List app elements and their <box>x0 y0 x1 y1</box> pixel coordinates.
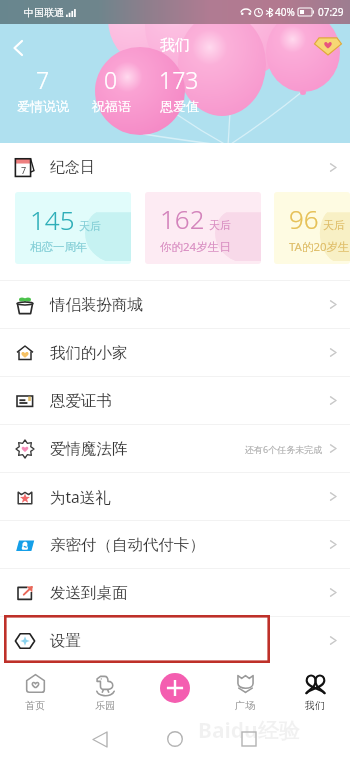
button[interactable]: 设置 <box>0 617 350 664</box>
button[interactable]: Back <box>82 721 118 757</box>
staticText: 亲密付（自动代付卡） <box>50 535 205 555</box>
button[interactable]: 我们的小家 <box>0 329 350 376</box>
staticText: 首页 <box>25 699 45 712</box>
staticText: 天后 <box>209 218 231 232</box>
staticText: 相恋一周年 <box>30 240 88 254</box>
staticText: 爱情说说 <box>17 98 69 114</box>
staticText: 我们 <box>305 699 325 712</box>
button[interactable]: 恩爱证书 <box>0 377 350 424</box>
staticText: 7 <box>36 64 50 95</box>
button[interactable]: Add <box>160 673 190 703</box>
button[interactable]: 情侣装扮商城 <box>0 281 350 328</box>
staticText: 162 <box>160 201 205 236</box>
staticText: 祝福语 <box>92 98 131 114</box>
button[interactable]: 爱情魔法阵 <box>0 425 350 472</box>
button[interactable]: 为ta送礼 <box>0 473 350 520</box>
staticText: 中国联通 <box>24 6 64 19</box>
button[interactable]: 首页 <box>0 664 70 719</box>
button[interactable]: Back <box>2 32 34 64</box>
button[interactable]: VIP <box>314 34 342 56</box>
staticText: 广场 <box>235 699 255 712</box>
staticText: 恩爱证书 <box>50 391 112 411</box>
staticText: 爱情魔法阵 <box>50 439 128 459</box>
staticText: 我们的小家 <box>50 343 128 363</box>
button[interactable]: 亲密付（自动代付卡） <box>0 521 350 568</box>
button[interactable]: 145 <box>15 192 131 264</box>
button[interactable]: 7 <box>0 143 350 192</box>
staticText: 我们 <box>160 36 190 55</box>
staticText: 情侣装扮商城 <box>50 295 143 315</box>
staticText: 你的24岁生日 <box>160 239 231 255</box>
button[interactable]: 广场 <box>210 664 280 719</box>
staticText: 设置 <box>50 631 81 651</box>
staticText: 天后 <box>79 219 101 233</box>
staticText: 145 <box>30 202 75 237</box>
button[interactable]: 0 <box>77 64 145 114</box>
button[interactable]: Recents <box>231 721 267 757</box>
button[interactable]: 我们 <box>280 664 350 719</box>
staticText: 发送到桌面 <box>50 583 128 603</box>
staticText: 40% <box>275 5 295 19</box>
button[interactable]: 173 <box>145 64 213 114</box>
button[interactable]: 7 <box>9 64 77 114</box>
staticText: 恩爱值 <box>160 98 199 114</box>
button[interactable]: 162 <box>145 192 261 264</box>
staticText: Baidu经验 <box>198 716 300 745</box>
staticText: 96 <box>289 201 319 236</box>
button[interactable]: 96 <box>274 192 350 264</box>
button[interactable]: 发送到桌面 <box>0 569 350 616</box>
staticText: 纪念日 <box>50 158 95 177</box>
staticText: TA的20岁生日 <box>289 239 350 255</box>
staticText: 天后 <box>323 218 345 232</box>
staticText: 还有6个任务未完成 <box>245 443 323 455</box>
staticText: 0 <box>104 64 118 95</box>
staticText: 乐园 <box>95 699 115 712</box>
staticText: 173 <box>159 64 199 95</box>
button[interactable]: 乐园 <box>70 664 140 719</box>
staticText: 为ta送礼 <box>50 486 111 507</box>
staticText: 07:29 <box>318 5 344 19</box>
staticText: 7 <box>21 164 27 176</box>
button[interactable]: Home <box>157 721 193 757</box>
